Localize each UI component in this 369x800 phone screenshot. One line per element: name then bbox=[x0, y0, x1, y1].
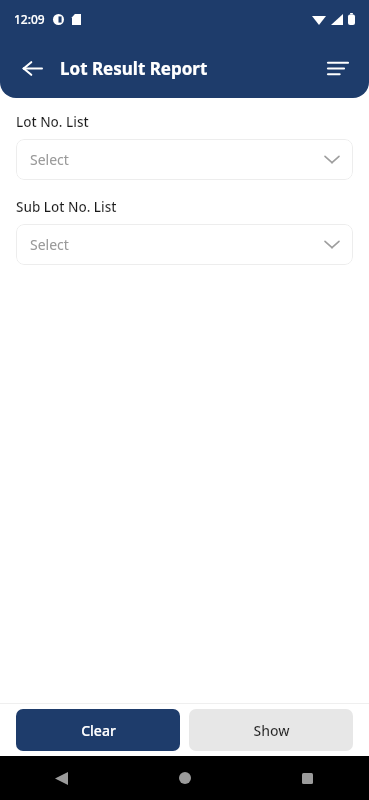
button[interactable]: Home bbox=[123, 756, 246, 800]
staticText: Select bbox=[30, 235, 69, 254]
staticText: 12:09 bbox=[14, 11, 45, 27]
button[interactable]: Recent apps bbox=[246, 756, 369, 800]
button[interactable]: Back bbox=[10, 46, 54, 90]
button[interactable]: Clear bbox=[16, 709, 180, 751]
button[interactable]: Select bbox=[16, 224, 353, 265]
staticText: Lot No. List bbox=[16, 113, 89, 131]
staticText: Lot Result Report bbox=[60, 57, 208, 80]
staticText: Select bbox=[30, 150, 69, 169]
button[interactable]: Show bbox=[189, 709, 353, 751]
staticText: Sub Lot No. List bbox=[16, 198, 117, 216]
button[interactable]: Select bbox=[16, 139, 353, 180]
staticText: Clear bbox=[81, 721, 116, 740]
staticText: Show bbox=[253, 721, 290, 740]
button[interactable]: Menu bbox=[317, 47, 359, 89]
button[interactable]: Back bbox=[0, 756, 123, 800]
